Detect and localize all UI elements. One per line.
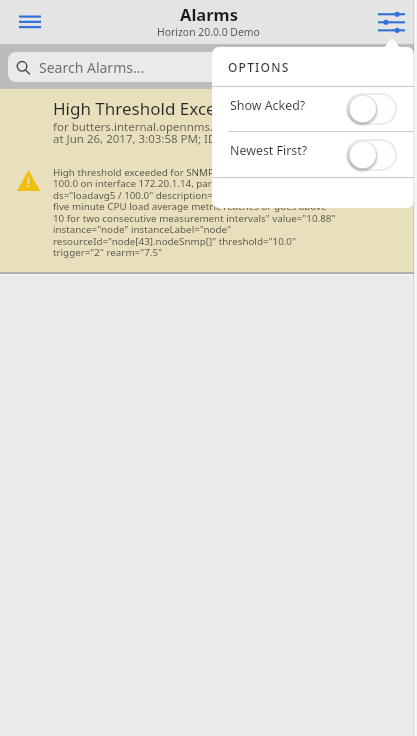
- staticText: OPTIONS: [228, 59, 290, 75]
- staticText: at Jun 26, 2017, 3:03:58 PM; ID 108: [53, 131, 240, 147]
- button[interactable]: Menu: [8, 0, 51, 44]
- button[interactable]: Search Alarms...: [8, 52, 409, 82]
- staticText: High Threshold Exceeded: [53, 97, 256, 120]
- staticText: Alarms: [180, 3, 238, 25]
- staticText: trigger="2" rearm="7.5": [53, 246, 162, 259]
- button[interactable]: Toggle: [347, 140, 396, 170]
- button[interactable]: Filter options: [370, 0, 412, 44]
- staticText: five minute CPU load average metric reac…: [53, 200, 327, 213]
- button[interactable]: Toggle: [347, 94, 396, 124]
- staticText: for butters.internal.opennms.com: [53, 119, 237, 135]
- staticText: resourceId="node[43].nodeSnmp[]" thresho…: [53, 235, 296, 248]
- staticText: instance="node" instanceLabel="node": [53, 223, 231, 236]
- staticText: Show Acked?: [230, 97, 306, 114]
- button[interactable]: Newest First?: [212, 132, 414, 177]
- button[interactable]: Show Acked?: [212, 87, 414, 131]
- staticText: 10 for two consecutive measurement inter…: [53, 212, 336, 225]
- staticText: ds="loadavg5 / 100.0" description="Trigg…: [53, 189, 334, 202]
- staticText: Search Alarms...: [39, 58, 145, 77]
- staticText: 100.0 on interface 172.20.1.14, parms: l…: [53, 177, 309, 190]
- staticText: Newest First?: [230, 142, 308, 159]
- staticText: High threshold exceeded for SNMP datasou…: [53, 166, 376, 179]
- button[interactable]: High Threshold Exceeded: [0, 89, 417, 276]
- staticText: Horizon 20.0.0 Demo: [157, 25, 260, 39]
